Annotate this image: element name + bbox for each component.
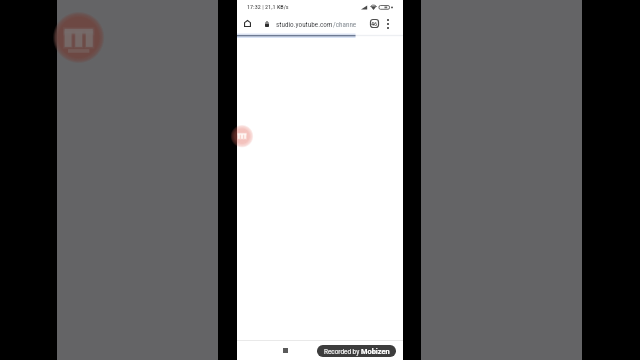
staticText: 46	[371, 21, 378, 27]
staticText: Mobizen	[361, 347, 390, 356]
button[interactable]: More options	[380, 14, 396, 33]
staticText: Recorded by	[324, 348, 361, 356]
staticText: /channe	[333, 20, 357, 28]
button[interactable]: Home	[239, 14, 256, 33]
button[interactable]: Recents	[273, 342, 297, 358]
staticText: 17:32 | 21,1 KB/s	[247, 3, 289, 10]
staticText: studio.youtube.com	[276, 20, 333, 28]
button[interactable]: Switch tabs	[366, 14, 383, 33]
